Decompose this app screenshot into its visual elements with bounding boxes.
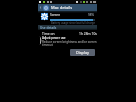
staticText: timeout (42, 43, 53, 47)
button[interactable]: Time on (38, 30, 97, 35)
staticText: Screen (50, 13, 61, 17)
staticText: Adjust power use (42, 36, 66, 40)
staticText: Battery usage since last full charge (51, 21, 95, 25)
staticText: Use details (40, 26, 57, 30)
button[interactable]: Screen (38, 11, 97, 25)
button[interactable]: Adjust power use (38, 35, 97, 46)
button[interactable]: Back (38, 4, 43, 11)
staticText: Mac details (51, 5, 73, 10)
button[interactable]: Display (70, 49, 95, 56)
staticText: Display (76, 50, 89, 55)
staticText: 1h 28m 10s (79, 31, 97, 35)
staticText: Reduce screen brightness and/or screen (42, 40, 97, 44)
staticText: 98% (88, 13, 94, 17)
staticText: Time on (42, 31, 55, 35)
